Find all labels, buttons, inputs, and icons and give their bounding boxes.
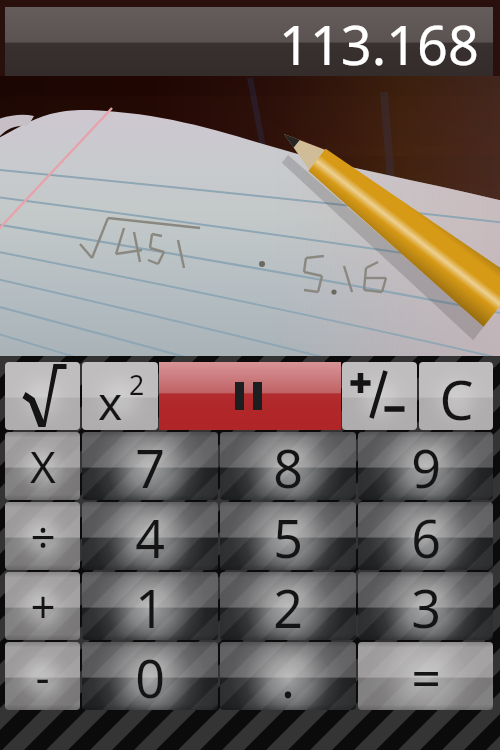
button[interactable]: = xyxy=(358,642,493,710)
button[interactable]: Square root xyxy=(5,362,80,430)
button[interactable]: 6 xyxy=(358,502,493,570)
staticText: 4 xyxy=(135,502,165,570)
button[interactable]: 0 xyxy=(82,642,218,710)
button[interactable]: 8 xyxy=(220,432,356,500)
button[interactable]: 5 xyxy=(220,502,356,570)
other: Plus minus sign xyxy=(342,362,417,430)
button[interactable]: C xyxy=(419,362,493,430)
button[interactable]: 113.168 xyxy=(5,7,493,76)
staticText: = xyxy=(411,642,441,710)
button[interactable]: 2 xyxy=(220,572,356,640)
other: Square root xyxy=(5,362,80,430)
button[interactable]: + xyxy=(5,572,80,640)
button[interactable]: 3 xyxy=(358,572,493,640)
button[interactable]: 4 xyxy=(82,502,218,570)
staticText: 9 xyxy=(411,432,441,500)
button[interactable]: . xyxy=(220,642,356,710)
staticText: 8 xyxy=(273,432,303,500)
staticText: + xyxy=(30,576,56,636)
button[interactable]: 7 xyxy=(82,432,218,500)
staticText: 7 xyxy=(135,432,165,500)
staticText: 113.168 xyxy=(279,7,479,72)
staticText: . xyxy=(281,642,295,710)
button[interactable]: Pause xyxy=(159,362,341,430)
button[interactable]: x xyxy=(82,362,158,430)
staticText: ÷ xyxy=(30,506,56,566)
button[interactable]: Plus minus sign xyxy=(342,362,417,430)
staticText: 6 xyxy=(411,502,441,570)
staticText: x xyxy=(98,371,123,430)
button[interactable]: - xyxy=(5,642,80,710)
button[interactable]: X xyxy=(5,432,80,500)
staticText: 3 xyxy=(411,572,441,640)
staticText: 2 xyxy=(129,366,145,402)
button[interactable]: 1 xyxy=(82,572,218,640)
staticText: - xyxy=(35,646,50,706)
staticText: 5 xyxy=(273,502,303,570)
button[interactable]: ÷ xyxy=(5,502,80,570)
staticText: 0 xyxy=(135,642,165,710)
button[interactable]: 9 xyxy=(358,432,493,500)
staticText: C xyxy=(439,362,474,430)
staticText: X xyxy=(30,436,56,496)
staticText: 1 xyxy=(135,572,165,640)
staticText: 2 xyxy=(273,572,303,640)
